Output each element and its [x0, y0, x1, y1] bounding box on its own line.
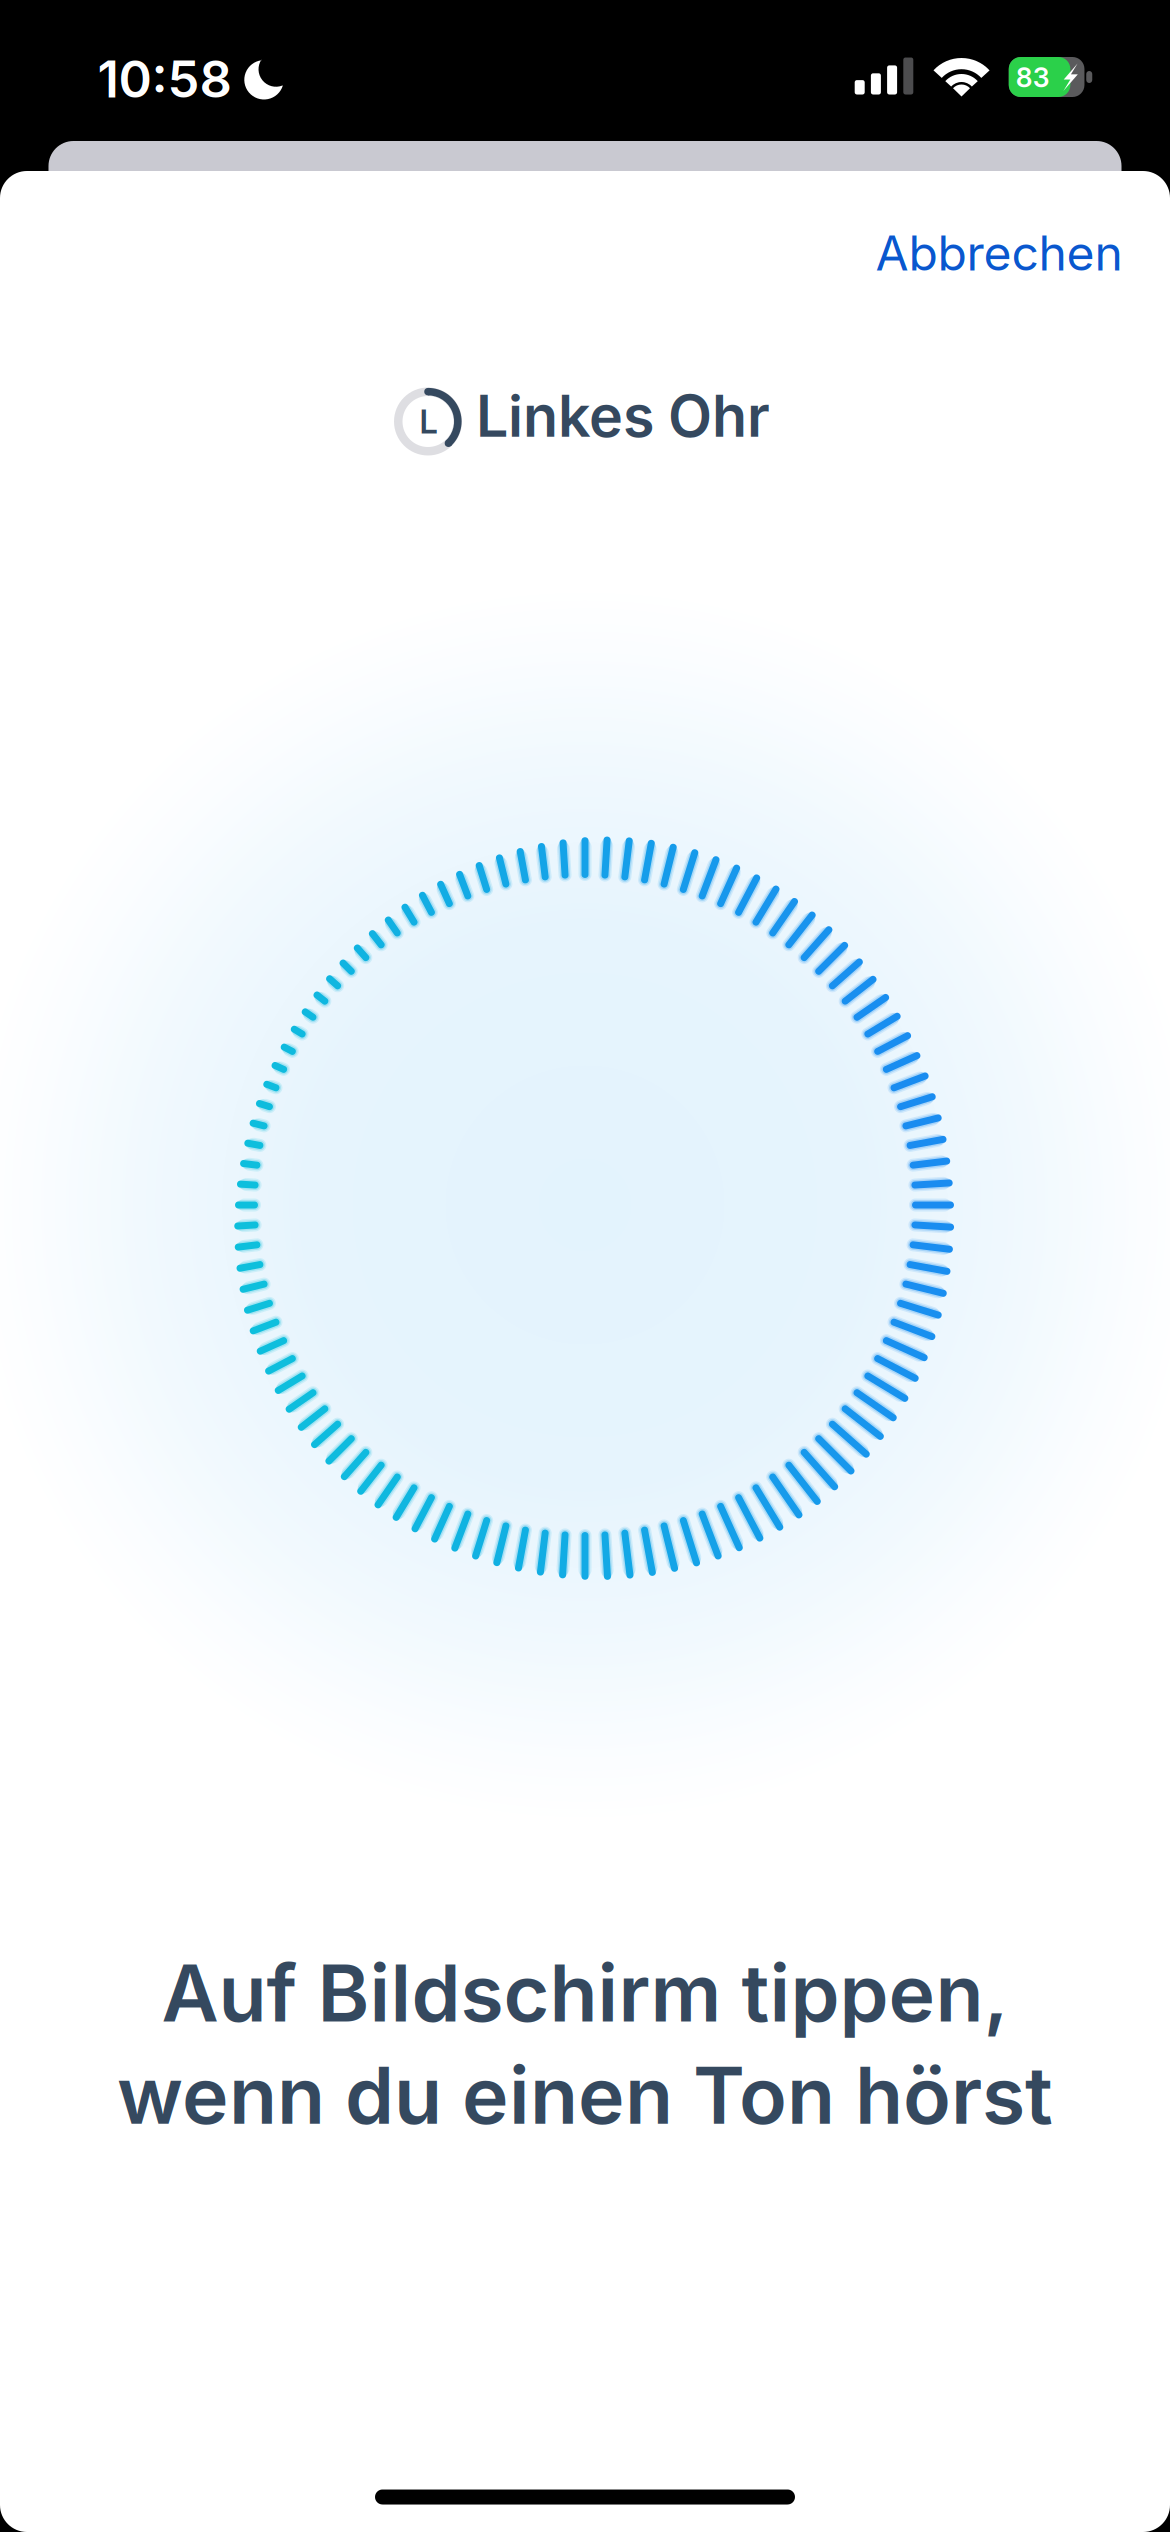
staticText: wenn du einen Ton hörst [117, 2047, 1053, 2143]
staticText: Abbrechen [875, 224, 1122, 282]
staticText: 83 [1016, 61, 1050, 94]
staticText: L [419, 402, 437, 441]
staticText: 10:58 [97, 48, 231, 110]
button[interactable]: Abbrechen [845, 198, 1152, 308]
staticText: Auf Bildschirm tippen, [161, 1945, 1008, 2040]
staticText: Linkes Ohr [476, 381, 770, 451]
